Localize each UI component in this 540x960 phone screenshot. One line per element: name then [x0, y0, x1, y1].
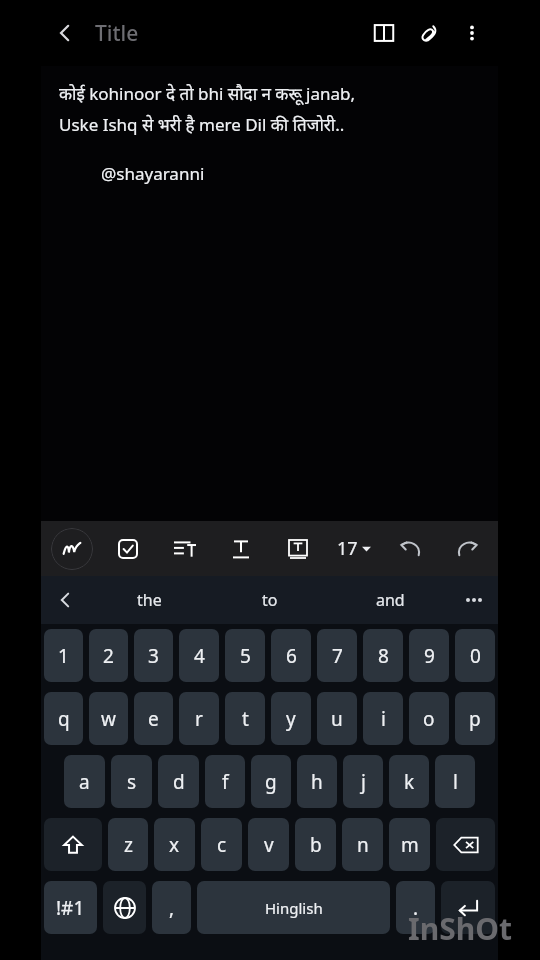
staticText: d: [173, 769, 185, 795]
staticText: u: [331, 706, 343, 732]
staticText: a: [79, 769, 90, 795]
staticText: 7: [332, 643, 343, 669]
staticText: g: [265, 769, 277, 795]
button[interactable]: text box: [277, 528, 319, 570]
button[interactable]: c: [201, 818, 242, 871]
staticText: 3: [148, 643, 159, 669]
button[interactable]: p: [455, 692, 495, 745]
button[interactable]: 9: [409, 629, 449, 682]
button[interactable]: and: [330, 576, 450, 624]
button[interactable]: Undo: [390, 528, 432, 570]
staticText: 17: [337, 536, 358, 561]
button[interactable]: i: [363, 692, 403, 745]
staticText: 9: [424, 643, 435, 669]
button[interactable]: e: [134, 692, 173, 745]
button[interactable]: underline: [220, 528, 262, 570]
button[interactable]: to: [210, 576, 330, 624]
button[interactable]: y: [271, 692, 311, 745]
button[interactable]: Attach: [406, 11, 450, 55]
button[interactable]: h: [297, 755, 337, 808]
staticText: j: [361, 769, 366, 795]
button[interactable]: the: [89, 576, 210, 624]
button[interactable]: a: [64, 755, 105, 808]
staticText: m: [401, 832, 419, 858]
button[interactable]: Previous: [41, 576, 89, 624]
button[interactable]: x: [154, 818, 195, 871]
button[interactable]: 8: [363, 629, 403, 682]
staticText: r: [195, 706, 203, 732]
button[interactable]: u: [317, 692, 357, 745]
button[interactable]: f: [205, 755, 245, 808]
staticText: y: [286, 706, 296, 732]
button[interactable]: 5: [225, 629, 265, 682]
button[interactable]: j: [343, 755, 383, 808]
staticText: @shayaranni: [101, 162, 205, 185]
button[interactable]: w: [89, 692, 128, 745]
button[interactable]: Backspace: [436, 818, 495, 871]
staticText: 1: [58, 643, 69, 669]
button[interactable]: 4: [179, 629, 219, 682]
staticText: to: [262, 589, 278, 611]
button[interactable]: r: [179, 692, 219, 745]
button[interactable]: q: [44, 692, 83, 745]
button[interactable]: 1: [44, 629, 83, 682]
button[interactable]: 7: [317, 629, 357, 682]
button[interactable]: n: [342, 818, 383, 871]
button[interactable]: m: [389, 818, 430, 871]
staticText: 2: [103, 643, 114, 669]
button[interactable]: 0: [455, 629, 495, 682]
staticText: i: [381, 706, 386, 732]
staticText: t: [242, 706, 249, 732]
button[interactable]: b: [295, 818, 336, 871]
staticText: k: [404, 769, 415, 795]
staticText: z: [124, 832, 133, 858]
button[interactable]: Shift: [44, 818, 102, 871]
staticText: ,: [169, 895, 175, 921]
button[interactable]: 2: [89, 629, 128, 682]
button[interactable]: Enter: [441, 881, 495, 934]
button[interactable]: t: [225, 692, 265, 745]
staticText: and: [376, 589, 405, 611]
staticText: 5: [240, 643, 251, 669]
staticText: f: [222, 769, 229, 795]
button[interactable]: 17: [333, 536, 375, 561]
staticText: q: [58, 706, 70, 732]
button[interactable]: o: [409, 692, 449, 745]
button[interactable]: Redo: [446, 528, 488, 570]
button[interactable]: ,: [152, 881, 191, 934]
staticText: n: [357, 832, 369, 858]
button[interactable]: More options: [450, 11, 494, 55]
staticText: o: [423, 706, 435, 732]
staticText: the: [137, 589, 162, 611]
staticText: e: [148, 706, 159, 732]
button[interactable]: k: [389, 755, 429, 808]
staticText: 0: [470, 643, 481, 669]
staticText: InShOt: [408, 908, 512, 949]
button[interactable]: s: [111, 755, 152, 808]
staticText: p: [469, 706, 481, 732]
staticText: b: [310, 832, 322, 858]
button[interactable]: l: [435, 755, 475, 808]
button[interactable]: Hinglish: [197, 881, 390, 934]
staticText: कोई kohinoor दे तो bhi सौदा न करूू janab…: [59, 82, 355, 136]
button[interactable]: More suggestions: [450, 576, 498, 624]
button[interactable]: Read mode: [362, 11, 406, 55]
button[interactable]: 3: [134, 629, 173, 682]
button[interactable]: .: [396, 881, 435, 934]
button[interactable]: g: [251, 755, 291, 808]
button[interactable]: z: [108, 818, 148, 871]
button[interactable]: !#1: [44, 881, 97, 934]
staticText: !#1: [56, 895, 85, 921]
staticText: w: [101, 706, 116, 732]
button[interactable]: 6: [271, 629, 311, 682]
button[interactable]: d: [158, 755, 199, 808]
staticText: Title: [95, 19, 139, 48]
button[interactable]: Handwriting: [51, 528, 93, 570]
button[interactable]: Language: [103, 881, 146, 934]
button[interactable]: paragraph: [164, 528, 206, 570]
button[interactable]: Back: [41, 9, 89, 57]
staticText: x: [169, 832, 180, 858]
button[interactable]: v: [248, 818, 289, 871]
button[interactable]: check: [107, 528, 149, 570]
staticText: 6: [286, 643, 297, 669]
